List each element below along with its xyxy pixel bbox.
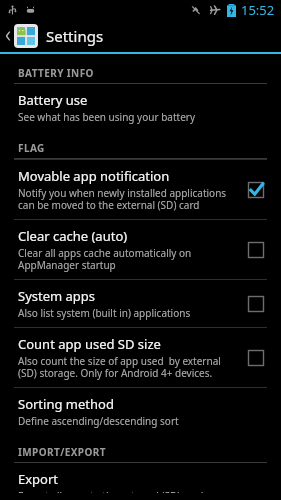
button[interactable]: System apps [0, 280, 281, 327]
staticText: Movable app notification [18, 167, 170, 185]
button[interactable]: Export [0, 463, 281, 500]
button[interactable]: Count app used SD size [0, 328, 281, 387]
staticText: Battery use [18, 91, 88, 109]
staticText: Clear cache (auto) [18, 227, 128, 245]
staticText: Settings [46, 26, 104, 46]
staticText: FLAG [18, 141, 45, 155]
button[interactable]: Clear cache (auto) [0, 220, 281, 279]
staticText: Define ascending/descending sort [18, 414, 179, 428]
button[interactable]: Movable app notification [0, 160, 281, 219]
staticText: Count app used SD size [18, 335, 161, 353]
button[interactable]: Settings [0, 20, 281, 52]
staticText: BATTERY INFO [18, 66, 94, 80]
staticText: Export all apps to the external (SD) car… [18, 489, 204, 493]
staticText: Clear all apps cache automatically on Ap… [18, 246, 192, 272]
staticText: 15:52 [241, 1, 275, 19]
staticText: System apps [18, 287, 96, 305]
staticText: Also count the size of app used by exter… [18, 354, 221, 380]
staticText: Export [18, 470, 59, 488]
button[interactable]: Unchecked [243, 291, 269, 317]
button[interactable]: Checked [243, 177, 269, 203]
button[interactable]: Unchecked [243, 345, 269, 371]
button[interactable]: Battery use [0, 84, 281, 131]
button[interactable]: Sorting method [0, 388, 281, 435]
staticText: Also list system (built in) applications [18, 306, 191, 320]
staticText: Notify you when newly installed applicat… [18, 186, 227, 212]
staticText: See what has been using your battery [18, 110, 196, 124]
button[interactable]: Unchecked [243, 237, 269, 263]
staticText: Sorting method [18, 395, 114, 413]
staticText: IMPORT/EXPORT [18, 445, 106, 459]
